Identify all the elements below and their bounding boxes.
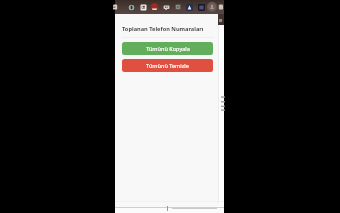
button[interactable]: Tümünü Temizle [122,59,213,72]
button[interactable]: Account [206,1,218,13]
button[interactable]: Extension [185,3,194,12]
staticText: Tümünü Kopyala [146,45,190,53]
button[interactable]: Extension [115,4,121,10]
button[interactable]: Extension [150,2,159,11]
button[interactable]: Screenshot extension [139,3,148,12]
button[interactable]: Tümünü Kopyala [122,42,213,55]
button[interactable]: Extension [197,3,206,12]
button[interactable]: Menu [221,4,227,10]
button[interactable]: Extension [127,3,136,12]
staticText: Tümünü Temizle [146,62,189,70]
staticText: Toplanan Telefon Numaraları [122,25,204,33]
button[interactable]: Extension [162,3,171,12]
button[interactable]: Extension [174,3,182,11]
